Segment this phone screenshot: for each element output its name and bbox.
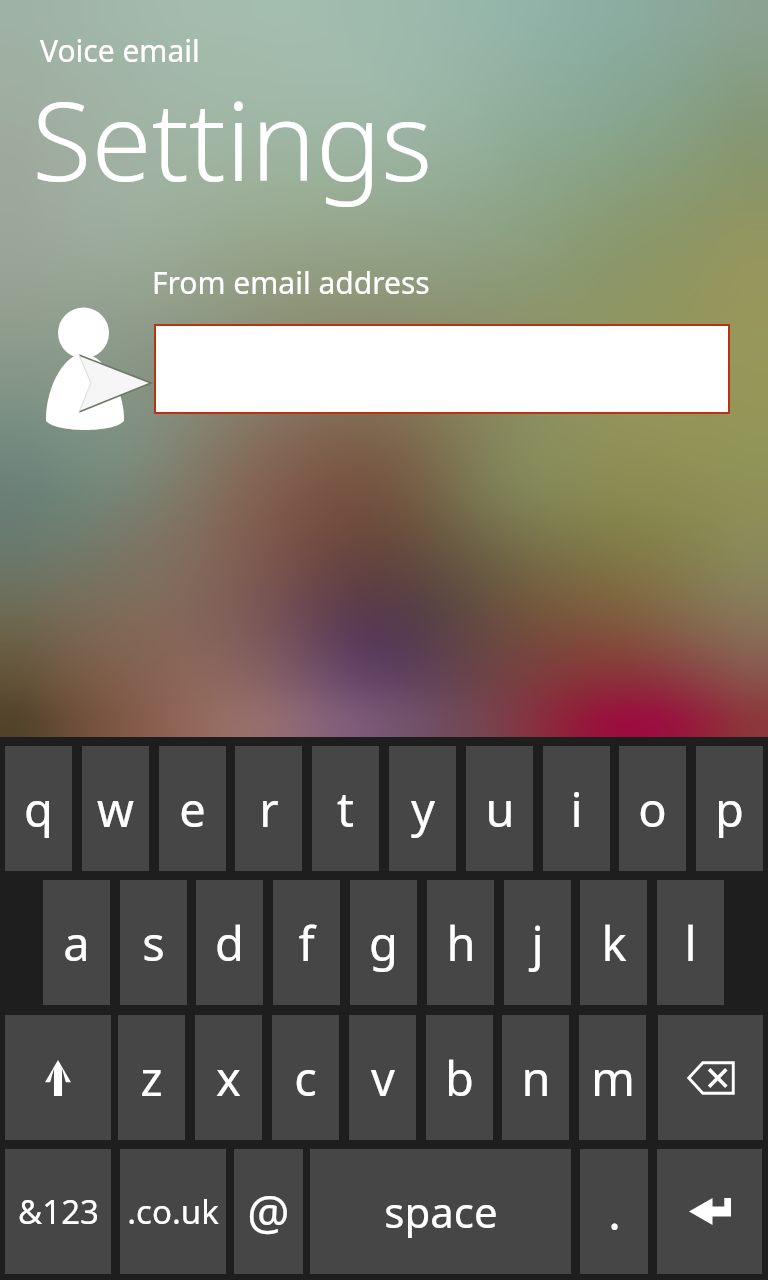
button[interactable]: d: [196, 880, 263, 1005]
staticText: k: [601, 911, 627, 975]
button[interactable]: r: [235, 746, 302, 871]
staticText: .co.uk: [127, 1189, 219, 1234]
staticText: c: [294, 1046, 317, 1110]
staticText: u: [485, 777, 515, 841]
staticText: n: [521, 1046, 551, 1110]
button[interactable]: u: [466, 746, 533, 871]
staticText: Settings: [32, 64, 433, 212]
button[interactable]: n: [502, 1015, 569, 1140]
staticText: t: [337, 777, 354, 841]
staticText: d: [215, 911, 244, 975]
staticText: Voice email: [40, 30, 200, 71]
button[interactable]: e: [159, 746, 226, 871]
staticText: m: [591, 1046, 635, 1110]
staticText: From email address: [152, 262, 430, 303]
staticText: y: [411, 777, 435, 841]
button[interactable]: f: [273, 880, 340, 1005]
button[interactable]: &123: [5, 1149, 111, 1274]
staticText: z: [140, 1046, 163, 1110]
button[interactable]: w: [82, 746, 149, 871]
button[interactable]: space: [310, 1149, 571, 1274]
staticText: f: [298, 911, 315, 975]
button[interactable]: p: [696, 746, 763, 871]
button[interactable]: g: [350, 880, 417, 1005]
button[interactable]: Backspace: [658, 1015, 763, 1140]
button[interactable]: .: [580, 1149, 648, 1274]
staticText: a: [63, 911, 90, 975]
button[interactable]: o: [619, 746, 686, 871]
button[interactable]: a: [43, 880, 110, 1005]
button[interactable]: Shift: [5, 1015, 111, 1140]
staticText: w: [97, 777, 134, 841]
button[interactable]: .co.uk: [120, 1149, 226, 1274]
button[interactable]: @: [234, 1149, 303, 1274]
staticText: s: [142, 911, 165, 975]
staticText: j: [531, 911, 544, 975]
button[interactable]: m: [579, 1015, 646, 1140]
button[interactable]: b: [426, 1015, 493, 1140]
staticText: &123: [18, 1189, 99, 1234]
button[interactable]: c: [272, 1015, 339, 1140]
button[interactable]: Enter: [657, 1149, 762, 1274]
button[interactable]: y: [389, 746, 456, 871]
button[interactable]: i: [543, 746, 610, 871]
staticText: h: [446, 911, 476, 975]
button[interactable]: z: [118, 1015, 185, 1140]
staticText: q: [24, 777, 53, 841]
staticText: i: [570, 777, 583, 841]
button[interactable]: v: [349, 1015, 416, 1140]
staticText: r: [259, 777, 279, 841]
button[interactable]: From email address text field: [154, 324, 730, 414]
staticText: space: [384, 1183, 498, 1240]
button[interactable]: x: [195, 1015, 262, 1140]
staticText: p: [715, 777, 744, 841]
button[interactable]: t: [312, 746, 379, 871]
button[interactable]: l: [657, 880, 724, 1005]
staticText: l: [684, 911, 697, 975]
button[interactable]: k: [580, 880, 647, 1005]
staticText: .: [608, 1180, 621, 1244]
staticText: o: [638, 777, 667, 841]
button[interactable]: q: [5, 746, 72, 871]
staticText: e: [179, 777, 206, 841]
staticText: x: [216, 1046, 241, 1110]
button[interactable]: h: [427, 880, 494, 1005]
staticText: v: [371, 1046, 395, 1110]
button[interactable]: s: [120, 880, 187, 1005]
staticText: @: [247, 1180, 290, 1244]
button[interactable]: j: [504, 880, 571, 1005]
staticText: b: [445, 1046, 474, 1110]
staticText: g: [369, 911, 398, 975]
